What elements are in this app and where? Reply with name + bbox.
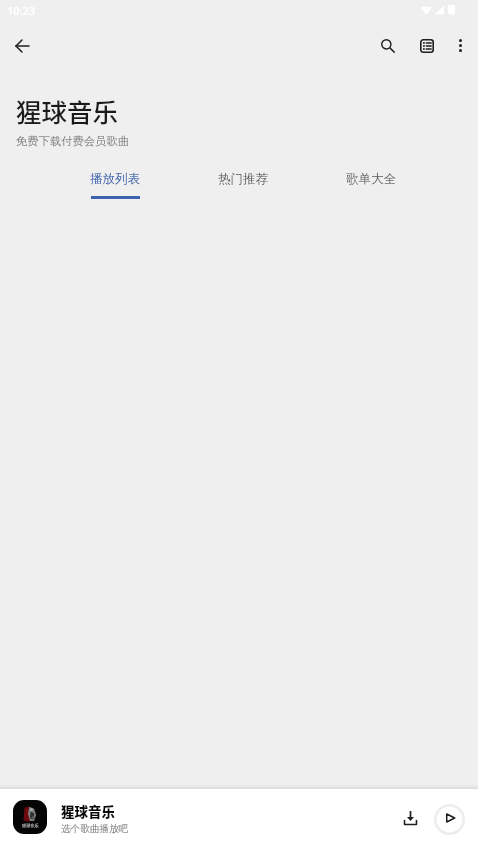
staticText: 选个歌曲播放吧: [61, 823, 129, 835]
staticText: 猩球音乐: [22, 823, 39, 828]
button[interactable]: Download: [388, 800, 428, 840]
button[interactable]: Play: [431, 801, 467, 837]
staticText: 免费下载付费会员歌曲: [16, 134, 129, 148]
button[interactable]: 热门推荐: [179, 166, 307, 206]
staticText: 热门推荐: [218, 171, 268, 187]
button[interactable]: Playlist: [407, 26, 447, 66]
button[interactable]: More options: [442, 27, 478, 63]
button[interactable]: 歌单大全: [307, 166, 435, 206]
button[interactable]: 播放列表: [51, 166, 179, 206]
staticText: 歌单大全: [346, 171, 396, 187]
button[interactable]: Back: [2, 26, 42, 66]
staticText: 播放列表: [90, 171, 140, 187]
button[interactable]: Search: [368, 26, 408, 66]
staticText: 猩球音乐: [16, 92, 119, 129]
staticText: 猩球音乐: [61, 801, 115, 821]
button[interactable]: 猩球音乐: [0, 789, 478, 850]
staticText: 10:23: [7, 3, 36, 18]
